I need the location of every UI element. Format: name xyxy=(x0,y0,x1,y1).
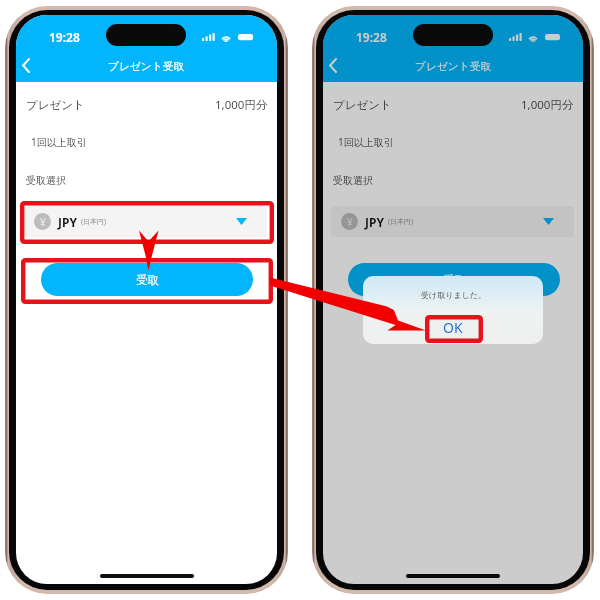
staticText: JPY xyxy=(58,214,77,230)
staticText: プレゼント受取 xyxy=(415,60,492,73)
staticText: 受取 xyxy=(136,273,159,287)
button[interactable]: Back xyxy=(323,51,347,80)
button[interactable]: 受取 xyxy=(348,263,560,296)
staticText: 1回以上取引 xyxy=(31,135,87,149)
staticText: 受取選択 xyxy=(333,174,373,187)
staticText: 19:28 xyxy=(49,29,80,45)
staticText: JPY xyxy=(365,214,384,230)
button[interactable]: ¥ xyxy=(24,206,267,237)
staticText: プレゼント xyxy=(26,98,85,112)
staticText: プレゼント受取 xyxy=(108,60,185,73)
button[interactable]: OK xyxy=(363,315,543,339)
staticText: 受け取りました。 xyxy=(421,290,486,300)
staticText: 1,000円分 xyxy=(521,97,574,113)
staticText: 受取 xyxy=(443,273,466,287)
button[interactable]: ¥ xyxy=(331,206,574,237)
staticText: ¥ xyxy=(347,215,353,229)
button[interactable]: 受取 xyxy=(41,263,253,296)
staticText: OK xyxy=(443,318,463,337)
staticText: (日本円) xyxy=(81,217,107,227)
staticText: 受取選択 xyxy=(26,174,66,187)
staticText: 1,000円分 xyxy=(215,97,268,113)
button[interactable]: Back xyxy=(16,51,40,80)
staticText: (日本円) xyxy=(388,217,414,227)
staticText: プレゼント xyxy=(333,98,392,112)
staticText: 1回以上取引 xyxy=(338,135,394,149)
staticText: ¥ xyxy=(40,215,46,229)
staticText: 19:28 xyxy=(356,29,387,45)
